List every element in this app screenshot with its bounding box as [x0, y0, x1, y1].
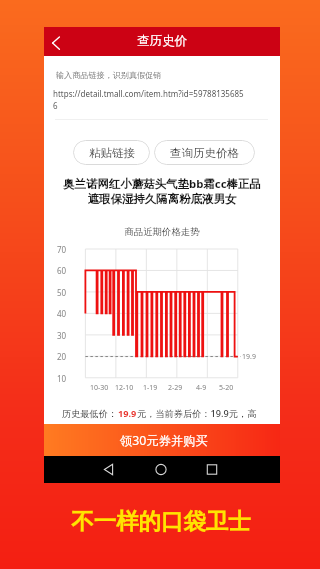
staticText: 元，当前券后价：19.9元，高	[137, 407, 257, 420]
button[interactable]: Back	[46, 28, 74, 56]
staticText: 60	[57, 265, 67, 276]
staticText: 12-10	[115, 383, 134, 393]
staticText: 领30元券并购买	[120, 432, 208, 449]
button[interactable]: 领30元券并购买	[44, 424, 280, 457]
staticText: 历史最低价：	[62, 408, 118, 420]
button[interactable]: Recents	[199, 456, 225, 483]
staticText: 查询历史价格	[170, 146, 239, 160]
staticText: 不一样的口袋卫士	[1, 507, 320, 535]
staticText: 4-9	[196, 383, 207, 393]
staticText: 5-20	[219, 383, 234, 393]
staticText: 粘贴链接	[89, 146, 135, 160]
button[interactable]: Home	[148, 456, 174, 483]
staticText: 10-30	[90, 383, 109, 393]
staticText: 10	[57, 373, 67, 384]
staticText: 奥兰诺网红小蘑菇头气垫bb霜cc棒正品遮瑕保湿持久隔离粉底液男女	[61, 176, 263, 207]
staticText: 2-29	[168, 383, 183, 393]
button[interactable]: 查询历史价格	[154, 140, 255, 165]
staticText: 19.9	[242, 352, 256, 362]
staticText: 40	[57, 308, 67, 319]
staticText: 70	[57, 244, 67, 255]
staticText: 19.9	[118, 407, 137, 420]
staticText: 1-19	[143, 383, 158, 393]
staticText: 商品近期价格走势	[44, 226, 280, 238]
staticText: 50	[57, 287, 67, 298]
button[interactable]: Back	[96, 456, 122, 483]
staticText: 30	[57, 330, 67, 341]
staticText: https://detail.tmall.com/item.htm?id=597…	[53, 88, 279, 112]
button[interactable]: 粘贴链接	[73, 140, 150, 165]
staticText: 20	[57, 351, 67, 362]
staticText: 查历史价	[137, 33, 187, 49]
staticText: 输入商品链接，识别真假促销	[56, 70, 162, 80]
